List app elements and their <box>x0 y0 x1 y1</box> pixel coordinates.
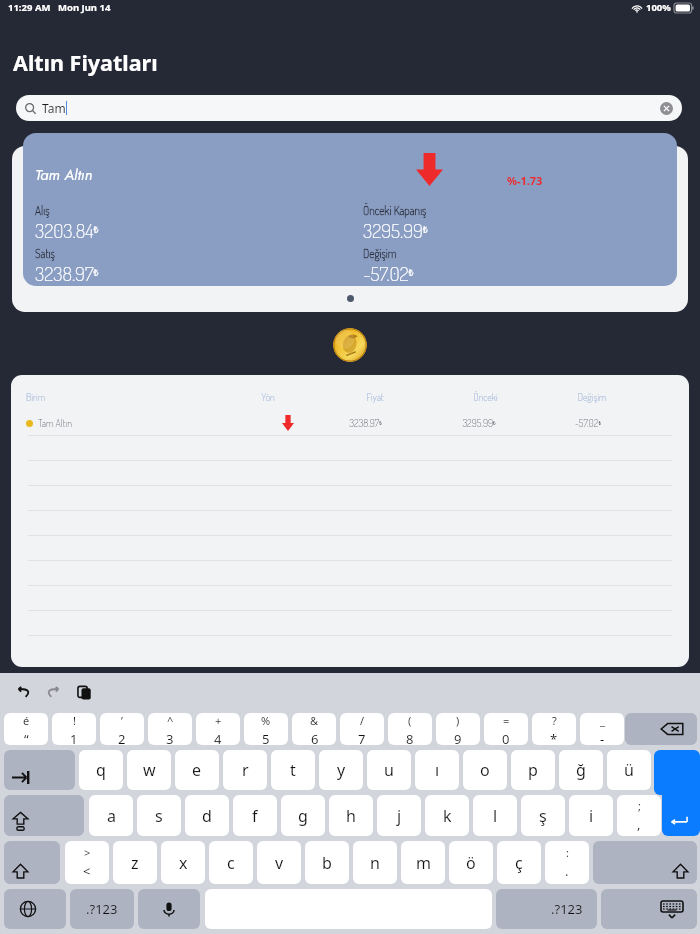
button[interactable]: ) <box>436 713 480 745</box>
button[interactable]: Undo <box>12 682 34 704</box>
button[interactable]: Tam Altın <box>11 414 689 433</box>
staticText: 11:29 AM <box>8 1 51 14</box>
button[interactable]: c <box>209 841 253 884</box>
staticText: j <box>397 805 402 827</box>
staticText: + <box>215 713 222 728</box>
button[interactable]: ; <box>617 795 661 836</box>
button[interactable]: s <box>137 795 181 836</box>
staticText: 6 <box>311 730 319 745</box>
button[interactable]: / <box>340 713 384 745</box>
button[interactable]: & <box>292 713 336 745</box>
button[interactable]: y <box>319 750 363 790</box>
staticText: “ <box>24 730 29 745</box>
button[interactable]: Redo <box>43 682 65 704</box>
button[interactable]: ! <box>52 713 96 745</box>
staticText: - <box>600 730 605 745</box>
staticText: w <box>143 759 156 781</box>
button[interactable]: f <box>233 795 277 836</box>
button[interactable]: Shift <box>4 841 60 884</box>
staticText: Tam <box>42 100 66 116</box>
button[interactable]: Change keyboard <box>4 889 66 929</box>
button[interactable]: ö <box>449 841 493 884</box>
button[interactable]: Clear <box>660 102 673 115</box>
button[interactable]: ( <box>388 713 432 745</box>
button[interactable]: u <box>367 750 411 790</box>
button[interactable]: g <box>281 795 325 836</box>
staticText: 3203.84₺ <box>35 218 99 243</box>
button[interactable]: n <box>353 841 397 884</box>
button[interactable]: Tab <box>4 750 75 790</box>
staticText: Tam Altın <box>35 164 93 186</box>
button[interactable]: ü <box>607 750 651 790</box>
button[interactable]: d <box>185 795 229 836</box>
staticText: = <box>503 713 510 728</box>
staticText: Önceki Kapanış <box>363 203 427 218</box>
button[interactable]: > <box>65 841 109 884</box>
button[interactable]: b <box>305 841 349 884</box>
button[interactable]: Shift <box>593 841 697 884</box>
button[interactable]: Tam Altın <box>23 133 677 286</box>
button[interactable]: q <box>79 750 123 790</box>
button[interactable]: Dictation <box>138 889 200 929</box>
button[interactable]: o <box>463 750 507 790</box>
button[interactable]: m <box>401 841 445 884</box>
button[interactable]: = <box>484 713 528 745</box>
staticText: Tam Altın <box>38 417 72 430</box>
staticText: ş <box>539 805 547 827</box>
button[interactable]: Paste <box>74 682 96 704</box>
staticText: -57.02₺ <box>575 417 601 430</box>
button[interactable]: Return <box>662 783 700 836</box>
staticText: 4 <box>214 730 222 745</box>
staticText: 5 <box>262 730 270 745</box>
staticText: h <box>346 805 356 827</box>
button[interactable]: ^ <box>148 713 192 745</box>
button[interactable]: a <box>89 795 133 836</box>
button[interactable]: _ <box>580 713 624 745</box>
button[interactable]: Tam <box>16 95 682 121</box>
button[interactable]: e <box>175 750 219 790</box>
button[interactable]: l <box>473 795 517 836</box>
staticText: 100% <box>646 1 671 14</box>
button[interactable]: + <box>196 713 240 745</box>
button[interactable]: z <box>113 841 157 884</box>
button[interactable]: ’ <box>100 713 144 745</box>
button[interactable]: Gold coin <box>333 328 367 362</box>
staticText: z <box>131 852 139 874</box>
staticText: > <box>84 845 91 860</box>
button[interactable]: ? <box>532 713 576 745</box>
button[interactable]: Numbers <box>70 889 134 929</box>
staticText: % <box>261 713 271 728</box>
button[interactable]: r <box>223 750 267 790</box>
button[interactable]: p <box>511 750 555 790</box>
button[interactable]: w <box>127 750 171 790</box>
staticText: x <box>179 852 188 874</box>
button[interactable]: j <box>377 795 421 836</box>
button[interactable]: k <box>425 795 469 836</box>
staticText: m <box>416 852 431 874</box>
button[interactable]: ç <box>497 841 541 884</box>
button[interactable]: ı <box>415 750 459 790</box>
button[interactable]: é <box>4 713 48 745</box>
button[interactable]: ğ <box>559 750 603 790</box>
staticText: ’ <box>121 713 123 728</box>
staticText: , <box>637 815 641 833</box>
staticText: Yön <box>261 391 275 404</box>
button[interactable]: v <box>257 841 301 884</box>
button[interactable]: Hide keyboard <box>601 889 697 929</box>
button[interactable]: : <box>545 841 589 884</box>
staticText: 0 <box>502 730 510 745</box>
button[interactable]: ş <box>521 795 565 836</box>
staticText: ! <box>73 713 76 728</box>
button[interactable]: Backspace <box>625 713 697 745</box>
button[interactable]: t <box>271 750 315 790</box>
button[interactable]: Numbers <box>496 889 597 929</box>
staticText: 3 <box>166 730 174 745</box>
button[interactable]: % <box>244 713 288 745</box>
button[interactable]: Caps lock <box>4 795 84 836</box>
staticText: . <box>565 862 569 880</box>
button[interactable]: h <box>329 795 373 836</box>
button[interactable]: i <box>569 795 613 836</box>
button[interactable]: x <box>161 841 205 884</box>
staticText: ü <box>624 759 634 781</box>
